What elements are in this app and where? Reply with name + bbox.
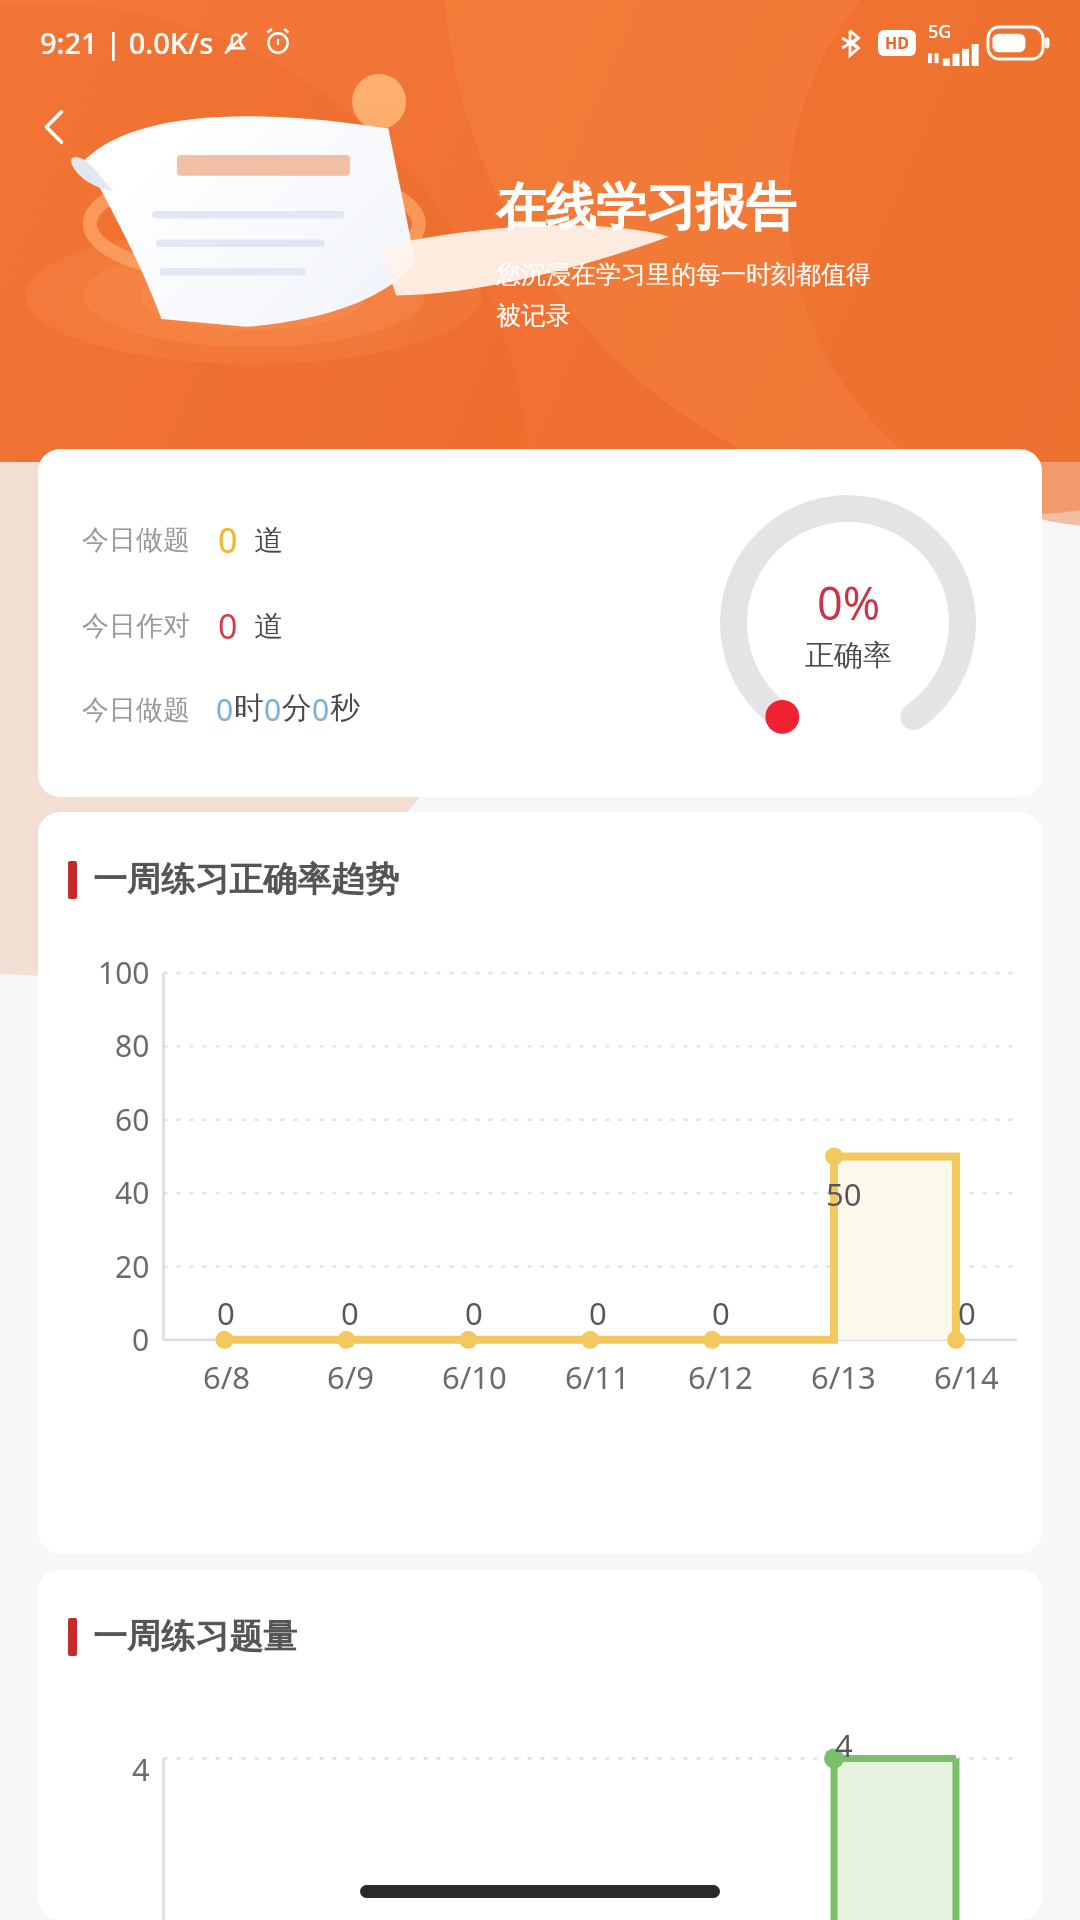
staticText: 被记录	[496, 300, 571, 331]
staticText: 100	[98, 952, 150, 993]
staticText: 分	[282, 689, 312, 727]
staticText: 0	[132, 1319, 150, 1360]
staticText: HD	[885, 32, 909, 54]
button[interactable]: 一周练习正确率趋势	[38, 812, 1042, 1554]
staticText: 0	[264, 689, 282, 730]
staticText: 今日做题	[82, 523, 190, 557]
staticText: 5G	[928, 19, 952, 44]
staticText: 一周练习正确率趋势	[93, 858, 399, 901]
staticText: 0	[958, 1292, 976, 1334]
staticText: 80	[115, 1025, 150, 1066]
staticText: 20	[115, 1246, 150, 1287]
staticText: 0	[341, 1292, 359, 1334]
staticText: 6/11	[565, 1356, 630, 1398]
staticText: 6/14	[934, 1356, 999, 1398]
staticText: 0	[218, 603, 238, 649]
staticText: 秒	[330, 689, 360, 727]
staticText: 6/8	[203, 1356, 250, 1398]
staticText: 今日作对	[82, 609, 190, 643]
staticText: 9:21 | 0.0K/s	[40, 23, 214, 62]
staticText: 0	[217, 1292, 235, 1334]
staticText: 0	[465, 1292, 483, 1334]
staticText: 6/12	[688, 1356, 753, 1398]
staticText: 今日做题	[82, 693, 190, 727]
staticText: 4	[132, 1748, 150, 1790]
staticText: 时	[234, 689, 264, 727]
button[interactable]: 一周练习题量	[38, 1569, 1042, 1920]
staticText: 6/10	[442, 1356, 507, 1398]
staticText: 6/13	[811, 1356, 876, 1398]
staticText: 正确率	[805, 637, 892, 674]
button[interactable]: Back	[20, 92, 90, 162]
staticText: 您沉浸在学习里的每一时刻都值得	[496, 259, 871, 290]
staticText: 0	[712, 1292, 730, 1334]
staticText: 0	[589, 1292, 607, 1334]
staticText: 0%	[817, 572, 881, 633]
staticText: 60	[115, 1099, 150, 1140]
staticText: 道	[254, 522, 283, 559]
staticText: 6/9	[327, 1356, 374, 1398]
staticText: 道	[254, 608, 283, 645]
staticText: 40	[115, 1172, 150, 1213]
staticText: 4	[835, 1724, 853, 1766]
staticText: 0	[218, 517, 238, 563]
button[interactable]: 今日做题	[38, 449, 1042, 797]
staticText: 在线学习报告	[496, 176, 796, 239]
staticText: 0	[216, 689, 234, 730]
staticText: 50	[826, 1173, 862, 1215]
staticText: 一周练习题量	[93, 1615, 297, 1658]
staticText: 0	[312, 689, 330, 730]
